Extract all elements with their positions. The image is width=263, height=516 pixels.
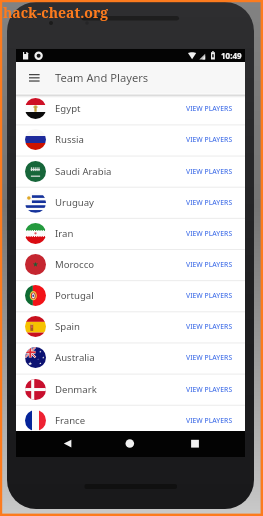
- button[interactable]: Morocco: [16, 249, 245, 280]
- button[interactable]: Back: [52, 431, 82, 457]
- staticText: VIEW PLAYERS: [186, 322, 233, 331]
- button[interactable]: Denmark: [16, 374, 245, 405]
- staticText: Iran: [55, 227, 74, 240]
- staticText: VIEW PLAYERS: [186, 167, 233, 176]
- staticText: VIEW PLAYERS: [186, 353, 233, 362]
- button[interactable]: France: [16, 405, 245, 436]
- staticText: VIEW PLAYERS: [186, 198, 233, 207]
- staticText: hack-cheat.org: [3, 3, 109, 22]
- staticText: Spain: [55, 320, 80, 333]
- staticText: France: [55, 414, 86, 427]
- button[interactable]: Russia: [16, 124, 245, 155]
- button[interactable]: Portugal: [16, 280, 245, 311]
- staticText: VIEW PLAYERS: [186, 260, 233, 269]
- staticText: VIEW PLAYERS: [186, 416, 233, 425]
- button[interactable]: Australia: [16, 342, 245, 373]
- staticText: VIEW PLAYERS: [186, 291, 233, 300]
- staticText: VIEW PLAYERS: [186, 104, 233, 113]
- staticText: Russia: [55, 133, 84, 146]
- button[interactable]: Open navigation drawer: [23, 66, 46, 89]
- staticText: VIEW PLAYERS: [186, 229, 233, 238]
- staticText: Morocco: [55, 258, 95, 271]
- staticText: Denmark: [55, 383, 97, 396]
- staticText: VIEW PLAYERS: [186, 385, 233, 394]
- button[interactable]: Iran: [16, 218, 245, 249]
- staticText: Uruguay: [55, 196, 95, 209]
- button[interactable]: Recent apps: [180, 431, 210, 457]
- button[interactable]: Spain: [16, 311, 245, 342]
- button[interactable]: Egypt: [16, 93, 245, 124]
- button[interactable]: Saudi Arabia: [16, 156, 245, 187]
- button[interactable]: Uruguay: [16, 187, 245, 218]
- staticText: 10:49: [221, 50, 242, 61]
- staticText: VIEW PLAYERS: [186, 135, 233, 144]
- staticText: Egypt: [55, 102, 81, 115]
- staticText: Portugal: [55, 289, 94, 302]
- staticText: Team And Players: [55, 70, 149, 85]
- button[interactable]: Home: [115, 431, 145, 457]
- staticText: Australia: [55, 351, 95, 364]
- staticText: Saudi Arabia: [55, 165, 112, 178]
